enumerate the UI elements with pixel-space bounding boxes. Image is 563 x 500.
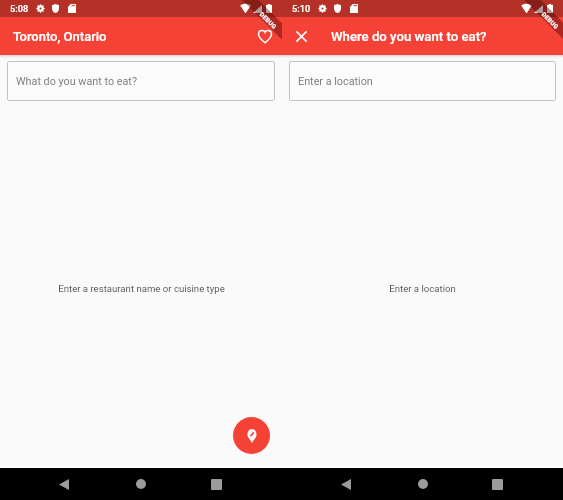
button[interactable]: Search restaurants (7, 61, 275, 101)
staticText: Enter a restaurant name or cuisine type (58, 283, 225, 294)
button[interactable]: Back (339, 476, 353, 492)
staticText: Enter a location (298, 75, 373, 88)
button[interactable]: Recents (208, 476, 224, 492)
button[interactable]: Pick location (233, 417, 270, 454)
staticText: DEBUG (259, 11, 278, 30)
button[interactable]: Home (415, 476, 431, 492)
button[interactable]: Favourites (253, 24, 277, 48)
staticText: DEBUG (541, 11, 560, 30)
staticText: What do you want to eat? (16, 75, 138, 88)
staticText: Toronto, Ontario (13, 29, 107, 44)
staticText: Where do you want to eat? (331, 29, 487, 44)
button[interactable]: Recents (489, 476, 505, 492)
button[interactable]: Back (57, 476, 71, 492)
staticText: 5:10 (292, 3, 311, 14)
button[interactable]: Enter a location (289, 61, 556, 101)
staticText: 5:08 (10, 3, 29, 14)
button[interactable]: Close (289, 24, 313, 48)
button[interactable]: Home (133, 476, 149, 492)
staticText: Enter a location (389, 283, 456, 294)
